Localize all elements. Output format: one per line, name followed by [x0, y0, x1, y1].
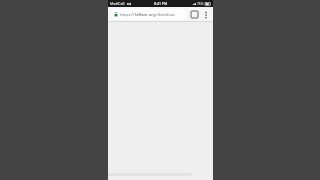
button[interactable]: More options: [201, 10, 211, 20]
staticText: 8:41 PM: [154, 1, 168, 6]
staticText: lafiam.org: [135, 12, 156, 18]
staticText: /dashboa: [156, 12, 175, 18]
staticText: 76%: [197, 2, 204, 6]
staticText: MadiCall: [110, 1, 125, 6]
button[interactable]: Switch tabs: [189, 9, 200, 20]
staticText: https://: [120, 12, 135, 18]
button[interactable]: https://: [111, 9, 187, 20]
